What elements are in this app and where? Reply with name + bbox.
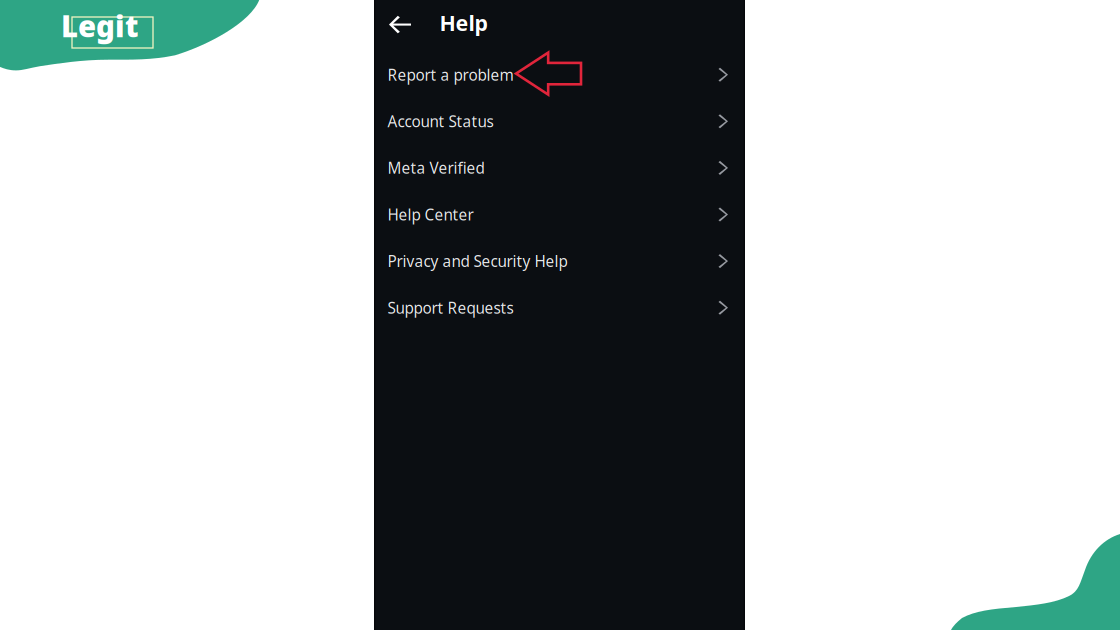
staticText: Privacy and Security Help (388, 251, 568, 272)
staticText: Account Status (388, 111, 494, 132)
staticText: Help (439, 9, 487, 37)
button[interactable]: Help Center (374, 191, 745, 238)
button[interactable]: Support Requests (374, 284, 745, 331)
staticText: Meta Verified (388, 157, 485, 178)
staticText: Legit (61, 6, 138, 45)
button[interactable]: Report a problem (374, 51, 745, 98)
button[interactable]: Back (383, 7, 417, 42)
button[interactable]: Privacy and Security Help (374, 238, 745, 284)
staticText: Help Center (388, 204, 474, 225)
button[interactable]: Account Status (374, 98, 745, 145)
staticText: Report a problem (388, 64, 514, 85)
button[interactable]: Meta Verified (374, 145, 745, 191)
staticText: Support Requests (388, 297, 514, 318)
